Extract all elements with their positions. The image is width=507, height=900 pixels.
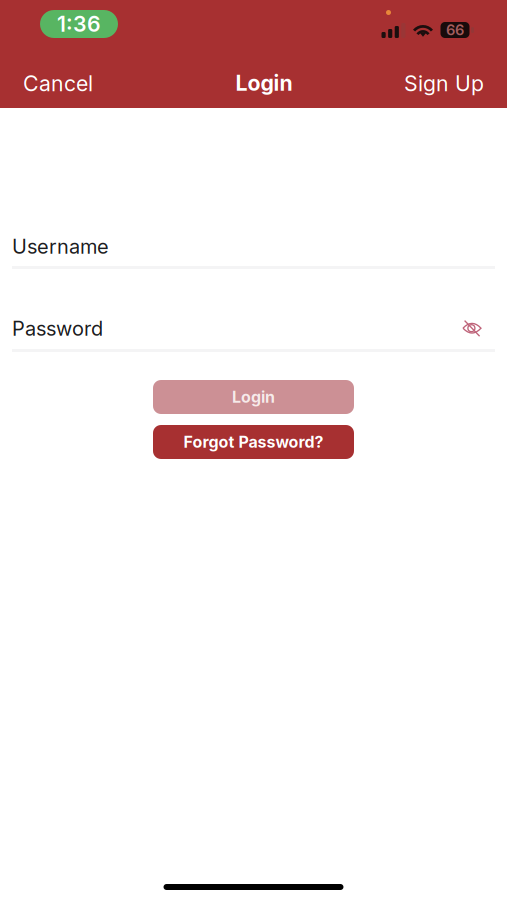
button[interactable]: Forgot Password?	[153, 425, 354, 459]
staticText: Login	[232, 387, 275, 407]
staticText: Cancel	[23, 71, 93, 96]
staticText: Login	[235, 70, 292, 96]
button[interactable]: Login	[153, 380, 354, 414]
staticText: 1:36	[57, 11, 101, 37]
staticText: Sign Up	[404, 71, 484, 96]
button[interactable]: Show password	[455, 311, 495, 345]
button[interactable]: Cancel	[15, 54, 101, 102]
staticText: Forgot Password?	[183, 432, 323, 452]
staticText: Username	[12, 234, 109, 259]
staticText: Password	[12, 316, 103, 341]
button[interactable]: Sign Up	[396, 54, 492, 102]
staticText: 66	[446, 21, 464, 39]
